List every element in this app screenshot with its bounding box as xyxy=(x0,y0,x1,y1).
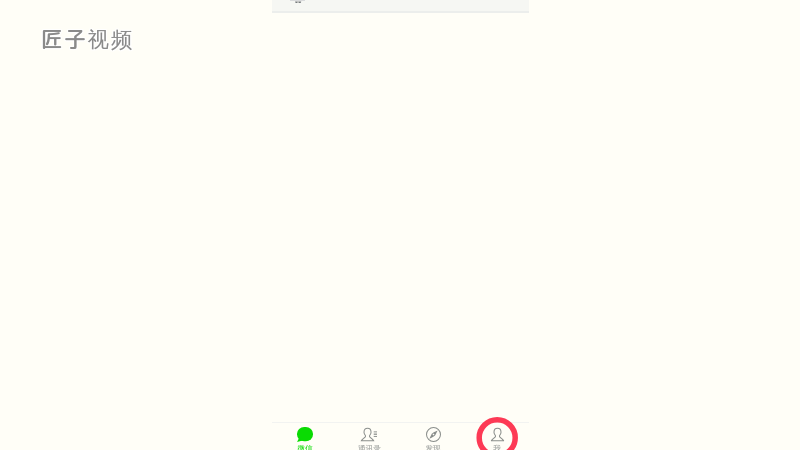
staticText: 匠子视频 xyxy=(42,23,136,53)
button[interactable]: Me xyxy=(465,425,529,450)
staticText: 通讯录 xyxy=(358,444,381,450)
staticText: 匠子视频 xyxy=(40,23,134,53)
button[interactable]: Contacts xyxy=(337,425,401,450)
staticText: 匠子视频 xyxy=(40,24,134,54)
staticText: 匠子视频 xyxy=(42,25,136,55)
staticText: 匠子视频 xyxy=(41,25,135,55)
staticText: 匠子视频 xyxy=(41,24,135,54)
staticText: 匠子视频 xyxy=(40,25,134,55)
staticText: 我 xyxy=(493,444,501,450)
staticText: 发现 xyxy=(425,444,441,450)
staticText: 匠子视频 xyxy=(42,24,136,54)
staticText: 微信 xyxy=(297,444,313,450)
button[interactable]: WeChat xyxy=(272,425,337,450)
staticText: 匠子视频 xyxy=(41,23,135,53)
button[interactable]: Discover xyxy=(401,425,465,450)
